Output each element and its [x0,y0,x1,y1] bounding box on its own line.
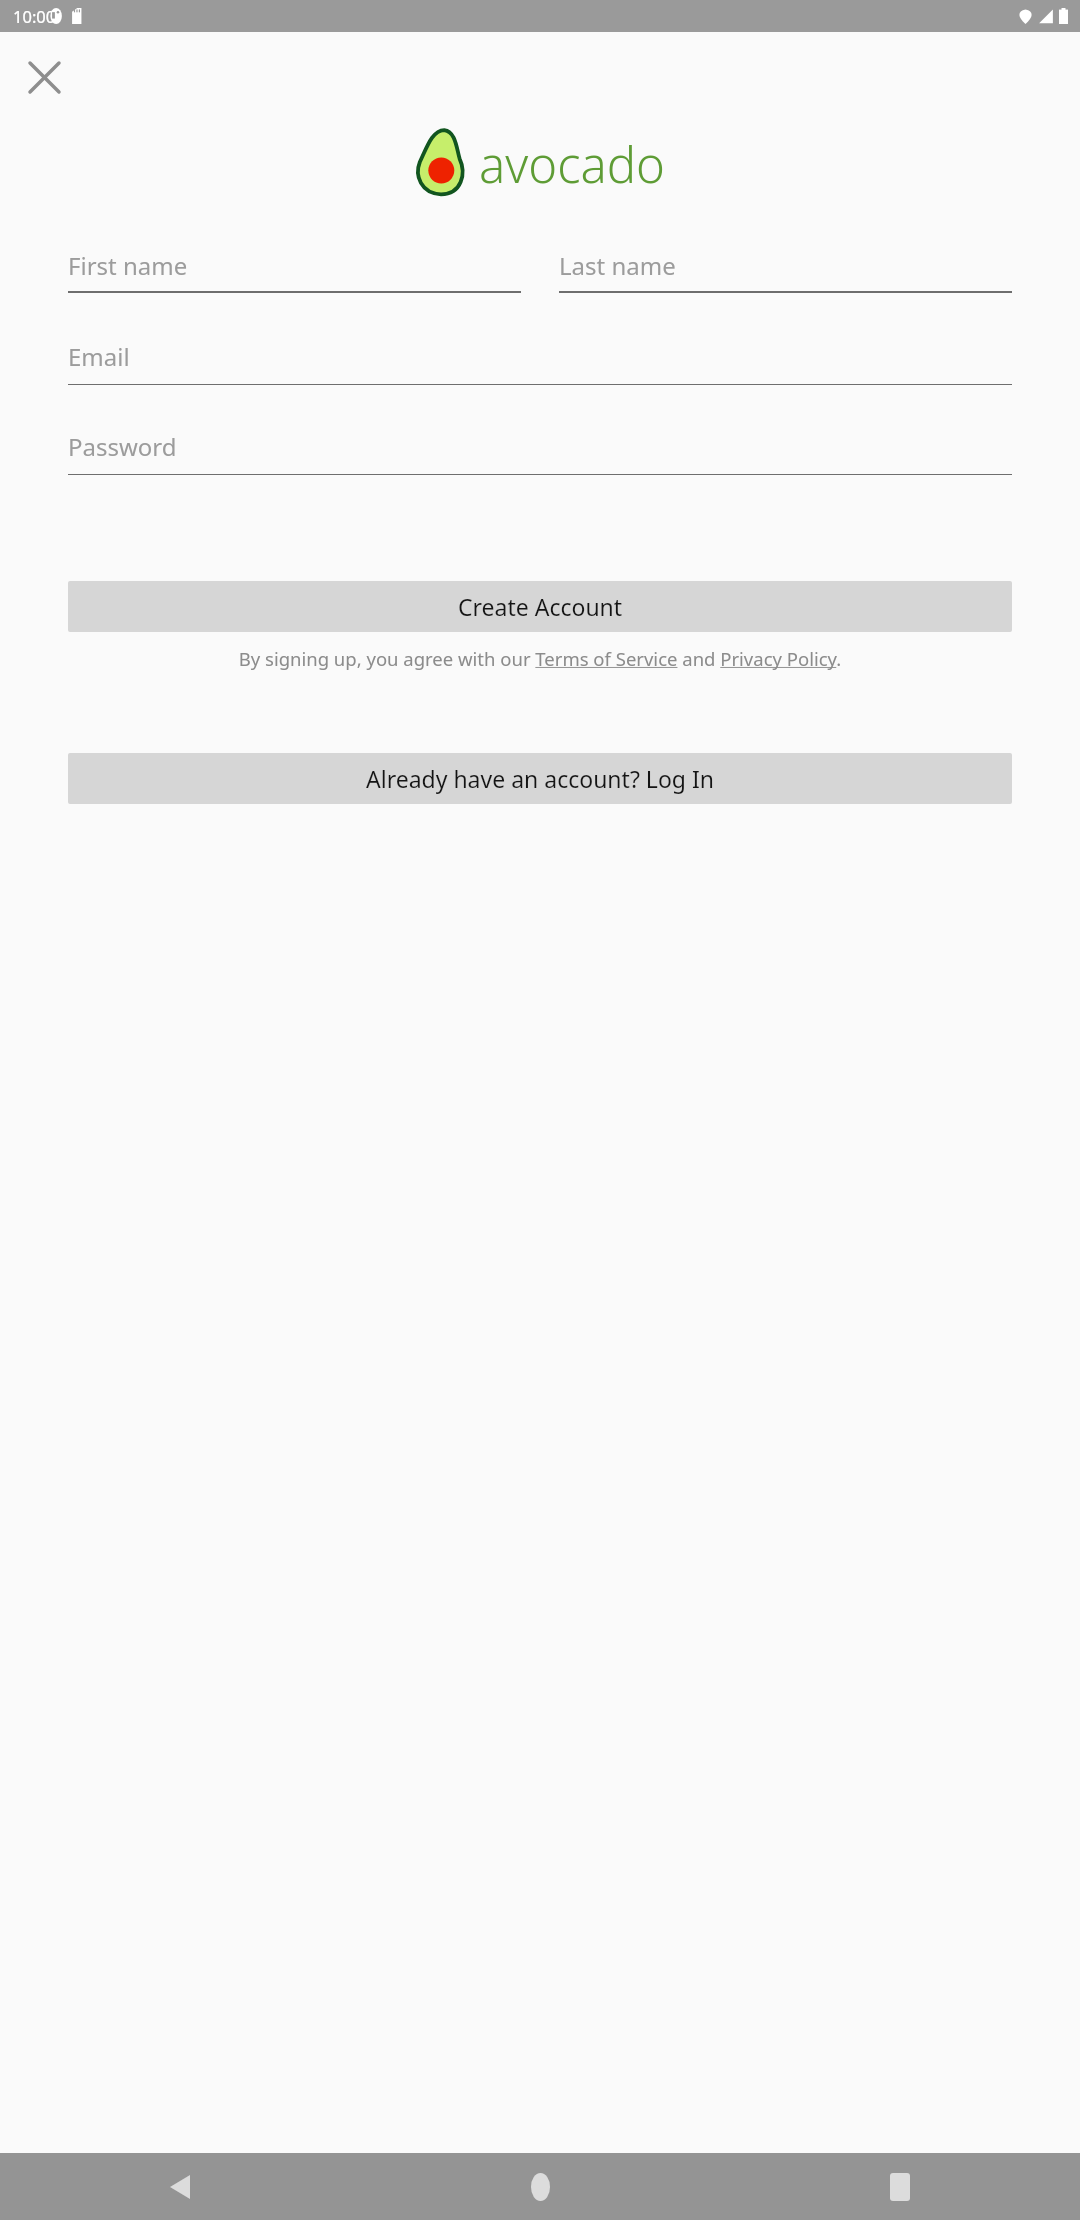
staticText: First name [68,249,188,282]
staticText: avocado [479,131,666,198]
staticText: Email [68,340,130,373]
button[interactable]: Last name [559,246,1012,293]
staticText: Already have an account? Log In [366,763,714,794]
button[interactable]: Create Account [68,581,1012,632]
button[interactable]: Home [512,2159,568,2215]
button[interactable]: First name [68,246,521,293]
staticText: Password [68,430,177,463]
button[interactable]: By signing up, you agree with our Terms … [56,646,1024,671]
staticText: 10:00 [13,5,56,27]
button[interactable]: Back [152,2159,208,2215]
staticText: Last name [559,249,676,282]
button[interactable]: Close [12,45,76,109]
button[interactable]: Password [68,427,1012,475]
staticText: Create Account [458,591,623,622]
button[interactable]: Recent apps [872,2159,928,2215]
button[interactable]: Already have an account? Log In [68,753,1012,804]
button[interactable]: Email [68,337,1012,385]
